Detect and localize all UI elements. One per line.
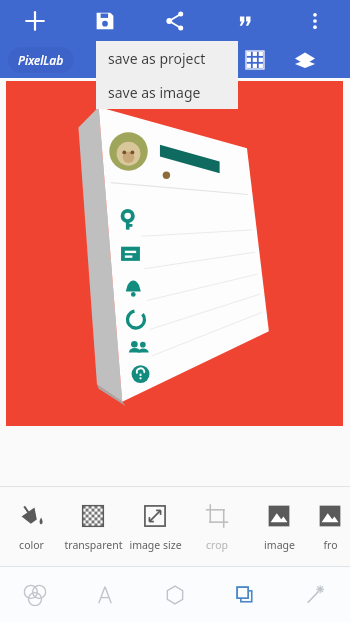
button[interactable]: save as image	[96, 75, 238, 109]
button[interactable]: PixelLab	[8, 47, 74, 73]
button[interactable]: Text	[70, 567, 140, 622]
button[interactable]: More options	[280, 0, 350, 42]
button[interactable]: image	[248, 487, 310, 566]
button[interactable]: transparent	[62, 487, 124, 566]
button[interactable]: Grid	[238, 43, 272, 77]
button[interactable]: Layers	[288, 43, 322, 77]
staticText: fro	[323, 538, 338, 552]
button[interactable]: Colors	[0, 567, 70, 622]
staticText: PixelLab	[18, 52, 64, 68]
staticText: save as image	[108, 83, 201, 102]
staticText: transparent	[64, 538, 123, 552]
button[interactable]	[6, 81, 343, 426]
button[interactable]: fro	[310, 487, 350, 566]
button[interactable]: Save	[70, 0, 140, 42]
button[interactable]: Add	[0, 0, 70, 42]
staticText: crop	[206, 538, 228, 552]
button[interactable]: Layers	[210, 567, 280, 622]
button[interactable]: Shape	[140, 567, 210, 622]
staticText: color	[19, 538, 44, 552]
button[interactable]: image size	[124, 487, 186, 566]
button[interactable]: Share	[140, 0, 210, 42]
button[interactable]: Quote	[210, 0, 280, 42]
button[interactable]: color	[0, 487, 62, 566]
staticText: image size	[129, 538, 182, 552]
staticText: save as project	[108, 49, 206, 68]
button[interactable]: crop	[186, 487, 248, 566]
button[interactable]: save as project	[96, 41, 238, 75]
button[interactable]: Effects	[280, 567, 350, 622]
staticText: image	[264, 538, 295, 552]
